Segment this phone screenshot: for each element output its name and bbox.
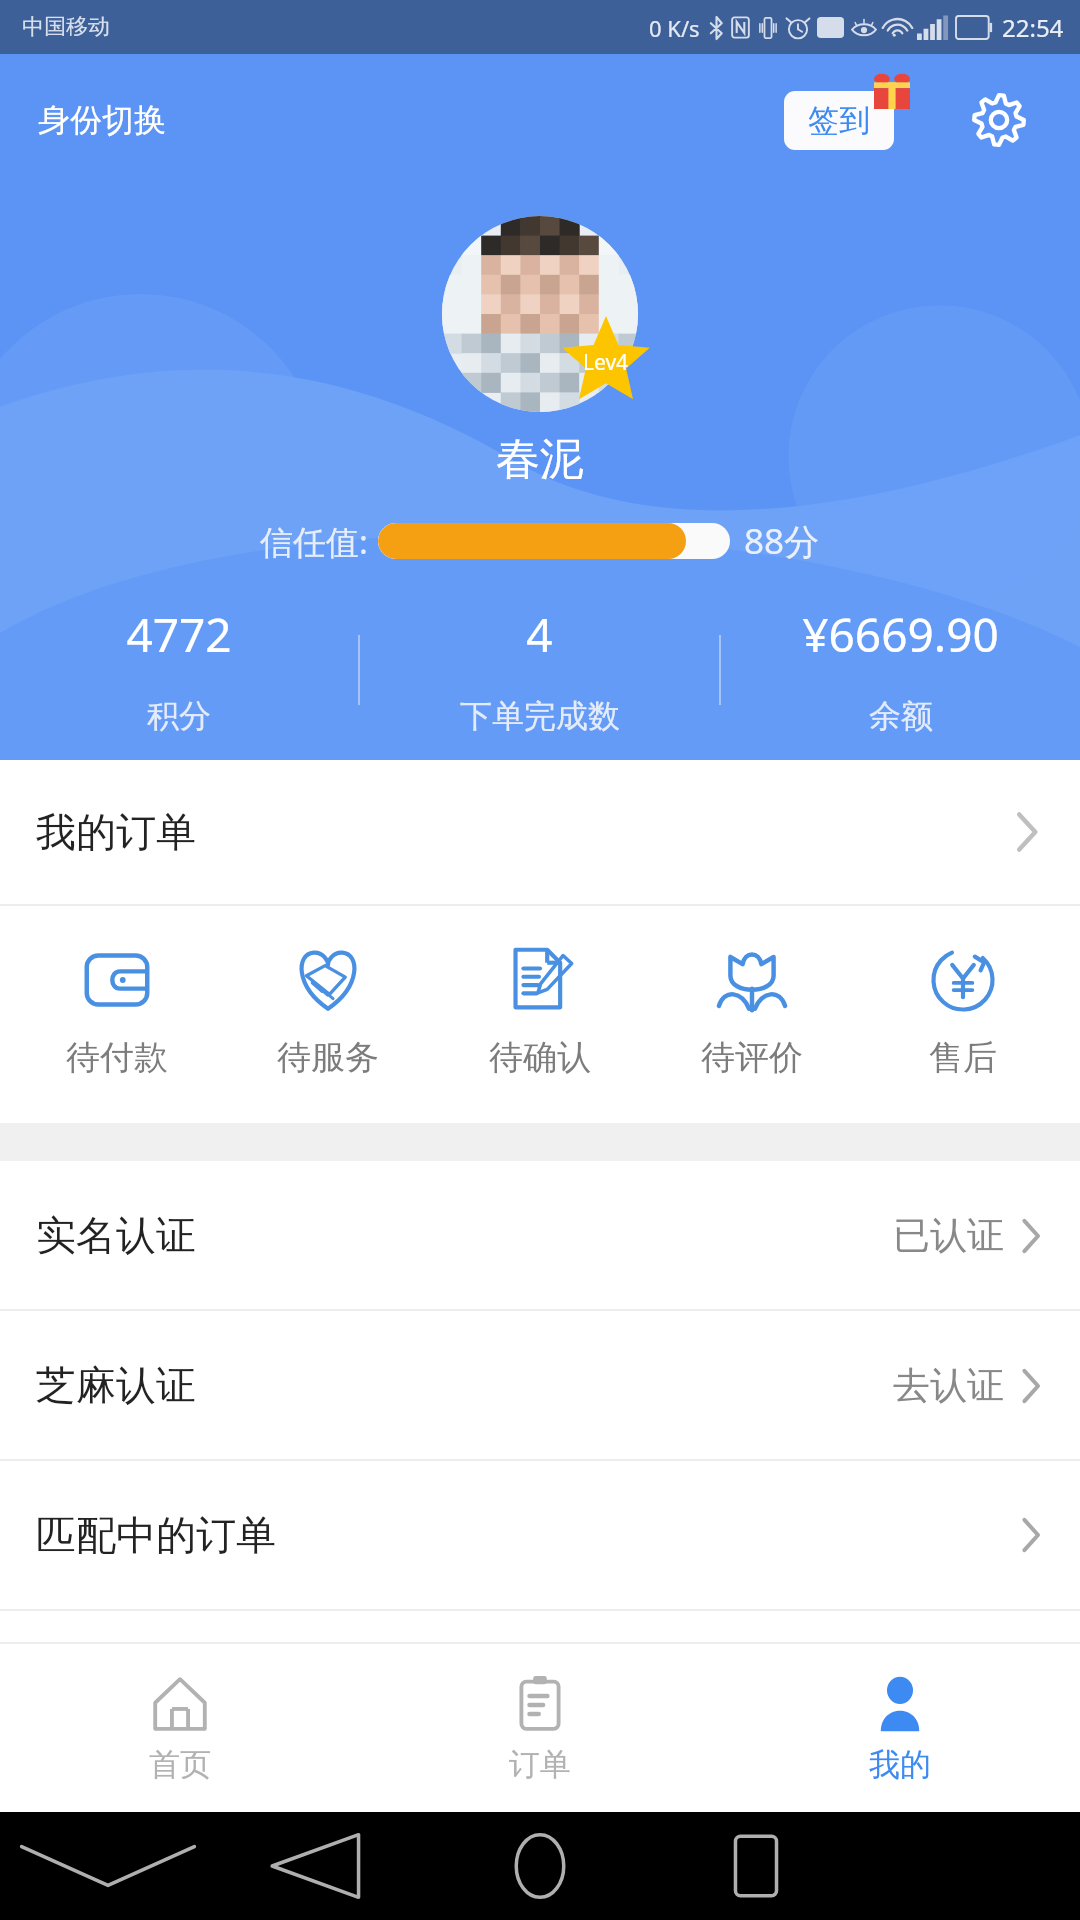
- staticText: 签到: [808, 101, 870, 140]
- button[interactable]: Back: [216, 1812, 432, 1920]
- staticText: 0 K/s: [649, 13, 700, 43]
- button[interactable]: 我的: [720, 1644, 1080, 1812]
- staticText: ¥6669.90: [802, 603, 999, 666]
- staticText: 下单完成数: [460, 696, 620, 736]
- staticText: 已认证: [893, 1212, 1004, 1259]
- staticText: 22:54: [1002, 11, 1064, 44]
- button[interactable]: ¥6669.90: [721, 601, 1080, 738]
- button[interactable]: 4772: [0, 601, 358, 738]
- staticText: 信任值:: [260, 519, 368, 564]
- staticText: 去认证: [893, 1362, 1004, 1409]
- staticText: 待确认: [489, 1036, 591, 1079]
- button[interactable]: 订单: [360, 1644, 720, 1812]
- staticText: 实名认证: [36, 1210, 196, 1260]
- staticText: 待服务: [277, 1036, 379, 1079]
- staticText: 待评价: [701, 1036, 803, 1079]
- staticText: 芝麻认证: [36, 1360, 196, 1410]
- button[interactable]: 待服务: [233, 940, 423, 1083]
- button[interactable]: 售后: [868, 940, 1058, 1083]
- button[interactable]: 签到: [784, 91, 894, 150]
- staticText: 88分: [744, 517, 820, 565]
- staticText: 中国移动: [22, 13, 110, 41]
- staticText: 身份切换: [38, 100, 166, 140]
- button[interactable]: 待付款: [22, 940, 212, 1083]
- staticText: 订单: [509, 1745, 571, 1784]
- button[interactable]: 实名认证: [0, 1161, 1080, 1309]
- staticText: 首页: [149, 1745, 211, 1784]
- staticText: 4: [526, 603, 553, 666]
- button[interactable]: Recents: [648, 1812, 864, 1920]
- button[interactable]: 4: [360, 601, 719, 738]
- staticText: Lev4: [583, 348, 629, 377]
- staticText: 我的订单: [36, 807, 196, 857]
- staticText: 积分: [147, 696, 211, 736]
- button[interactable]: 待评价: [657, 940, 847, 1083]
- staticText: 4772: [126, 603, 232, 666]
- button[interactable]: 匹配中的订单: [0, 1461, 1080, 1609]
- staticText: 匹配中的订单: [36, 1510, 276, 1560]
- staticText: 我的: [869, 1745, 931, 1784]
- button[interactable]: 首页: [0, 1644, 360, 1812]
- button[interactable]: Settings: [964, 85, 1034, 155]
- staticText: 春泥: [496, 432, 584, 487]
- button[interactable]: 我的订单: [0, 760, 1080, 904]
- button[interactable]: 待确认: [445, 940, 635, 1083]
- staticText: 待付款: [66, 1036, 168, 1079]
- staticText: 售后: [929, 1036, 997, 1079]
- button[interactable]: Hide keyboard: [0, 1812, 216, 1920]
- button[interactable]: 身份切换: [32, 92, 172, 148]
- staticText: 余额: [869, 696, 933, 736]
- button[interactable]: 芝麻认证: [0, 1311, 1080, 1459]
- button[interactable]: Home: [432, 1812, 648, 1920]
